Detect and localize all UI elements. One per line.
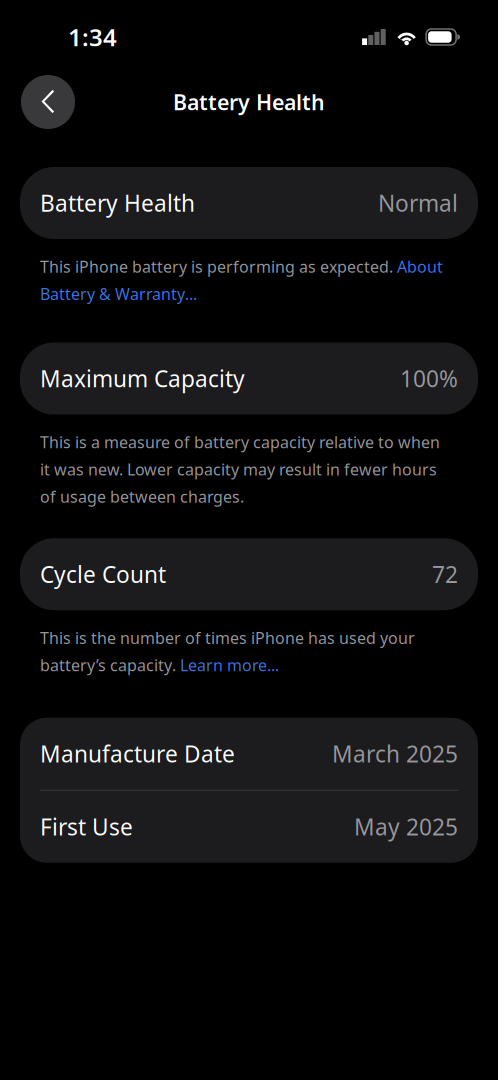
staticText: First Use <box>40 812 133 842</box>
button[interactable]: Back <box>21 75 75 129</box>
staticText: 1:34 <box>68 21 117 53</box>
staticText: Cycle Count <box>40 559 166 589</box>
staticText: Manufacture Date <box>40 739 235 769</box>
staticText: Normal <box>378 188 458 218</box>
staticText: 100% <box>400 363 458 393</box>
staticText: This is the number of times iPhone has u… <box>40 627 415 676</box>
button[interactable]: Maximum Capacity <box>20 342 478 414</box>
staticText: May 2025 <box>354 812 458 842</box>
button[interactable]: Battery Health <box>20 167 478 239</box>
staticText: 72 <box>432 559 458 589</box>
staticText: March 2025 <box>332 739 458 769</box>
staticText: Maximum Capacity <box>40 363 245 393</box>
staticText: This is a measure of battery capacity re… <box>40 431 440 507</box>
button[interactable]: Manufacture Date <box>20 718 478 790</box>
staticText: This iPhone battery is performing as exp… <box>40 256 443 304</box>
button[interactable]: Cycle Count <box>20 538 478 610</box>
button[interactable]: First Use <box>20 791 478 863</box>
staticText: Battery Health <box>40 188 195 218</box>
staticText: Battery Health <box>173 88 325 116</box>
